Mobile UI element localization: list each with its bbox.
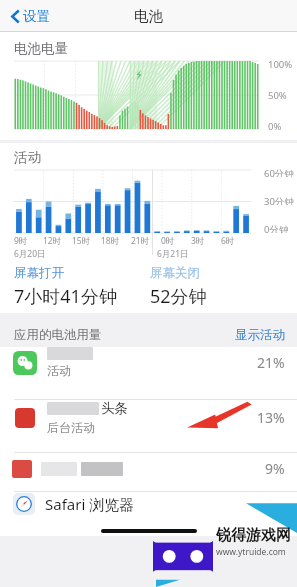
- staticText: 屏幕关闭: [150, 265, 200, 281]
- staticText: www.ytruide.com: [216, 546, 286, 558]
- staticText: 6月20日: [14, 248, 46, 260]
- staticText: 3时: [191, 235, 205, 247]
- staticText: 电池: [134, 7, 163, 25]
- staticText: 头条: [101, 400, 128, 417]
- staticText: 6月21日: [157, 248, 189, 260]
- button[interactable]: 显示活动: [231, 325, 289, 345]
- button[interactable]: 9%: [0, 453, 297, 491]
- staticText: 30分钟: [264, 195, 294, 205]
- staticText: Safari 浏览器: [45, 494, 135, 514]
- staticText: 屏幕打开: [14, 265, 64, 281]
- staticText: 50%: [268, 89, 287, 99]
- staticText: 活动: [47, 363, 71, 378]
- staticText: 0时: [161, 235, 175, 247]
- staticText: 应用的电池用量: [14, 327, 102, 343]
- staticText: 显示活动: [235, 327, 285, 343]
- staticText: 9%: [265, 459, 285, 478]
- staticText: 60分钟: [264, 167, 294, 177]
- staticText: 52分钟: [150, 284, 207, 309]
- button[interactable]: 活动: [0, 347, 297, 399]
- staticText: 设置: [23, 8, 50, 25]
- button[interactable]: Safari 浏览器: [0, 492, 297, 536]
- button[interactable]: 头条: [0, 400, 297, 452]
- staticText: 13%: [257, 408, 285, 427]
- staticText: 电池电量: [14, 40, 68, 57]
- staticText: 21%: [257, 353, 285, 372]
- staticText: 9时: [14, 235, 28, 247]
- button[interactable]: 设置: [8, 4, 53, 29]
- staticText: 15时: [72, 235, 91, 247]
- staticText: 12时: [43, 235, 62, 247]
- staticText: 锐得游戏网: [216, 526, 291, 545]
- staticText: 100%: [268, 58, 293, 68]
- staticText: 18时: [101, 235, 120, 247]
- staticText: 0分钟: [264, 223, 289, 233]
- staticText: 0%: [268, 120, 282, 130]
- staticText: 6时: [221, 235, 235, 247]
- staticText: 21时: [131, 235, 150, 247]
- staticText: 活动: [14, 149, 41, 166]
- staticText: 后台活动: [47, 420, 95, 435]
- staticText: 7小时41分钟: [14, 284, 117, 309]
